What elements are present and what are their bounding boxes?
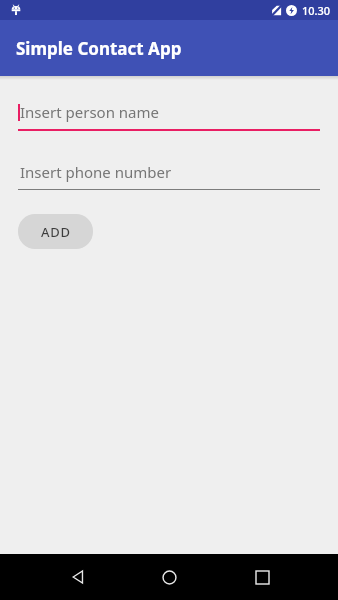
button[interactable]: Home xyxy=(149,557,189,597)
button[interactable]: Recent apps xyxy=(242,557,282,597)
staticText: Simple Contact App xyxy=(16,37,182,60)
button[interactable]: Back xyxy=(58,557,98,597)
staticText: Insert person name xyxy=(20,102,159,122)
button[interactable]: Insert person name xyxy=(18,100,320,131)
staticText: Insert phone number xyxy=(20,162,172,182)
button[interactable]: ADD xyxy=(18,214,93,249)
staticText: ADD xyxy=(41,223,71,241)
button[interactable]: Insert phone number xyxy=(18,160,320,190)
staticText: 10.30 xyxy=(302,3,331,18)
